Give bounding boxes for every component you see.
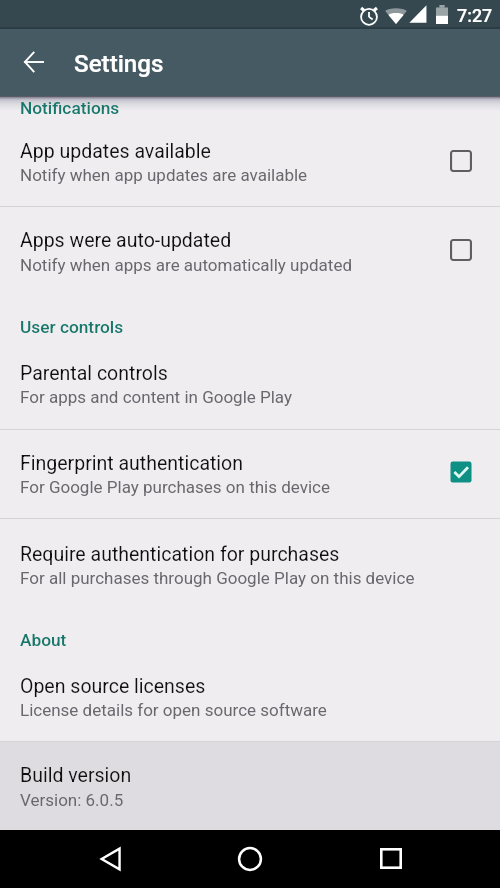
button[interactable]: Navigate up xyxy=(12,40,56,84)
button[interactable] xyxy=(0,430,500,518)
button[interactable] xyxy=(0,742,500,830)
button[interactable]: Recent apps xyxy=(369,837,413,881)
staticText: Build version xyxy=(20,764,132,787)
button[interactable] xyxy=(0,341,500,429)
staticText: Fingerprint authentication xyxy=(20,452,244,475)
button[interactable]: Back xyxy=(89,837,133,881)
button[interactable] xyxy=(0,207,500,296)
staticText: About xyxy=(20,630,67,650)
button[interactable] xyxy=(0,120,500,206)
staticText: App updates available xyxy=(20,140,211,163)
staticText: Open source licenses xyxy=(20,675,206,698)
staticText: 7:27 xyxy=(457,5,493,26)
staticText: Version: 6.0.5 xyxy=(20,790,124,810)
staticText: Parental controls xyxy=(20,362,168,385)
staticText: Notify when apps are automatically updat… xyxy=(20,255,353,275)
button[interactable] xyxy=(0,742,500,830)
staticText: Notifications xyxy=(20,98,120,118)
staticText: Notify when app updates are available xyxy=(20,165,308,185)
button[interactable] xyxy=(0,519,500,608)
button[interactable] xyxy=(0,654,500,741)
button[interactable]: Home xyxy=(228,836,272,880)
staticText: For Google Play purchases on this device xyxy=(20,477,330,497)
staticText: License details for open source software xyxy=(20,700,327,720)
staticText: Require authentication for purchases xyxy=(20,543,340,566)
staticText: Apps were auto-updated xyxy=(20,229,232,252)
staticText: User controls xyxy=(20,317,124,337)
staticText: Settings xyxy=(74,50,164,78)
staticText: For apps and content in Google Play xyxy=(20,387,293,407)
staticText: For all purchases through Google Play on… xyxy=(20,568,415,588)
